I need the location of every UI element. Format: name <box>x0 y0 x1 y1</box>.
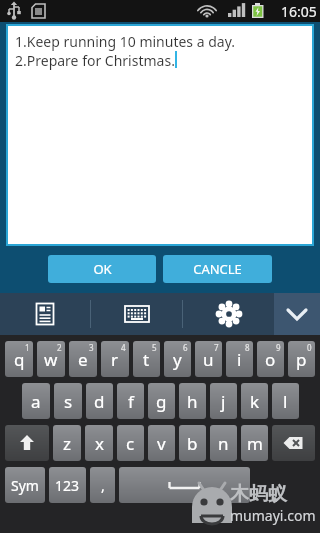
button[interactable]: o <box>257 341 284 377</box>
staticText: p <box>296 348 307 371</box>
button[interactable]: Hide keyboard <box>274 293 320 335</box>
staticText: s <box>64 390 73 413</box>
button[interactable]: p <box>288 341 315 377</box>
button[interactable]: g <box>148 383 175 419</box>
button[interactable]: Sym <box>5 467 45 503</box>
button[interactable]: r <box>101 341 129 377</box>
button[interactable]: m <box>241 425 268 461</box>
button[interactable]: f <box>117 383 144 419</box>
button[interactable]: z <box>53 425 81 461</box>
staticText: 7 <box>214 342 219 353</box>
staticText: 0 <box>307 342 312 353</box>
button[interactable]: i <box>226 341 253 377</box>
staticText: b <box>187 432 198 455</box>
staticText: 6 <box>183 342 188 353</box>
button[interactable]: Shift <box>5 425 49 461</box>
staticText: k <box>250 390 260 413</box>
staticText: mumayi.com <box>230 506 316 525</box>
button[interactable]: Backspace <box>272 425 315 461</box>
staticText: 9 <box>276 342 281 353</box>
staticText: c <box>126 432 135 455</box>
button[interactable]: t <box>133 341 160 377</box>
button[interactable]: b <box>179 425 206 461</box>
staticText: CANCLE <box>193 260 242 278</box>
staticText: 5 <box>152 342 157 353</box>
button[interactable]: h <box>179 383 206 419</box>
staticText: w <box>44 348 58 371</box>
staticText: 2 <box>57 342 62 353</box>
button[interactable]: w <box>37 341 65 377</box>
button[interactable]: u <box>195 341 222 377</box>
button[interactable]: c <box>117 425 144 461</box>
button[interactable]: k <box>241 383 268 419</box>
button[interactable]: OK <box>48 255 156 283</box>
staticText: f <box>128 390 134 413</box>
staticText: q <box>14 348 25 371</box>
staticText: 木蚂蚁 <box>230 482 287 506</box>
staticText: 1.Keep running 10 minutes a day. <box>15 32 235 51</box>
staticText: v <box>157 432 166 455</box>
staticText: g <box>156 390 167 413</box>
staticText: l <box>283 390 288 413</box>
button[interactable]: Settings <box>183 293 274 335</box>
staticText: 1 <box>25 342 30 353</box>
button[interactable]: q <box>5 341 33 377</box>
button[interactable]: Space <box>119 467 250 503</box>
staticText: o <box>265 348 276 371</box>
staticText: d <box>94 390 105 413</box>
button[interactable]: l <box>272 383 299 419</box>
staticText: n <box>218 432 229 455</box>
staticText: m <box>247 432 263 455</box>
staticText: 16:05 <box>281 2 317 21</box>
staticText: e <box>78 348 88 371</box>
staticText: OK <box>93 260 112 278</box>
button[interactable]: Clipboard <box>0 293 90 335</box>
button[interactable]: y <box>164 341 191 377</box>
button[interactable]: , <box>90 467 115 503</box>
staticText: z <box>63 432 71 455</box>
button[interactable]: n <box>210 425 237 461</box>
staticText: a <box>31 390 41 413</box>
staticText: t <box>143 348 150 371</box>
staticText: h <box>187 390 198 413</box>
button[interactable]: Keyboard <box>91 293 182 335</box>
staticText: x <box>95 432 104 455</box>
button[interactable]: CANCLE <box>163 255 272 283</box>
staticText: 4 <box>121 342 126 353</box>
button[interactable]: s <box>54 383 82 419</box>
staticText: , <box>101 476 105 495</box>
staticText: 8 <box>245 342 250 353</box>
button[interactable]: v <box>148 425 175 461</box>
button[interactable]: j <box>210 383 237 419</box>
staticText: Sym <box>11 476 39 495</box>
button[interactable]: x <box>85 425 113 461</box>
button[interactable]: 1.Keep running 10 minutes a day. <box>8 26 312 244</box>
staticText: r <box>111 348 119 371</box>
button[interactable]: e <box>69 341 97 377</box>
staticText: y <box>173 348 182 371</box>
button[interactable]: a <box>22 383 50 419</box>
staticText: u <box>203 348 214 371</box>
button[interactable]: d <box>86 383 113 419</box>
button[interactable]: 123 <box>49 467 86 503</box>
staticText: 2.Prepare for Christmas. <box>15 51 175 70</box>
staticText: 123 <box>55 476 80 495</box>
staticText: 3 <box>89 342 94 353</box>
staticText: j <box>221 390 226 413</box>
staticText: i <box>237 348 242 371</box>
